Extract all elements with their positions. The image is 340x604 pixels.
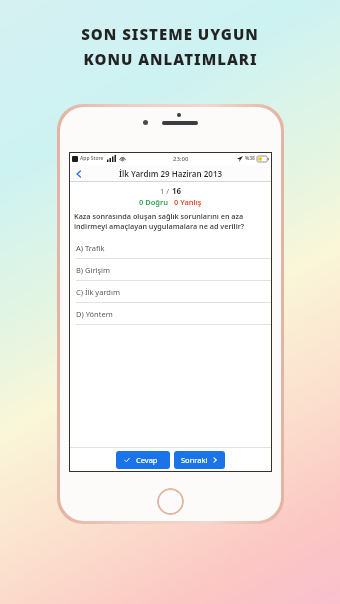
staticText: İlk Yardım 29 Haziran 2013	[119, 168, 223, 179]
staticText: B) Girişim	[76, 265, 111, 275]
button[interactable]: D) Yöntem	[69, 303, 272, 325]
staticText: D) Yöntem	[76, 309, 113, 319]
button[interactable]: Sonraki	[174, 451, 225, 469]
staticText: A) Trafik	[76, 243, 105, 253]
button[interactable]: Cevap	[116, 451, 170, 469]
staticText: SON SISTEME UYGUN	[81, 24, 259, 44]
button[interactable]: A) Trafik	[69, 237, 272, 259]
staticText: App Store	[80, 155, 104, 162]
staticText: 0 Yanlış	[174, 197, 202, 207]
button[interactable]: Home	[157, 488, 184, 515]
staticText: %38	[245, 155, 255, 162]
staticText: Kaza sonrasında oluşan sağlık sorunların…	[74, 211, 267, 231]
staticText: 1 /	[160, 186, 170, 196]
staticText: 16	[172, 185, 182, 196]
staticText: 0 Doğru	[139, 197, 169, 207]
staticText: 23:00	[173, 155, 189, 163]
staticText: Sonraki	[181, 455, 208, 465]
button[interactable]: Back	[71, 166, 87, 182]
staticText: C) İlk yardım	[76, 287, 120, 297]
button[interactable]: C) İlk yardım	[69, 281, 272, 303]
staticText: Cevap	[136, 455, 158, 465]
staticText: KONU ANLATIMLARI	[83, 49, 258, 69]
button[interactable]: B) Girişim	[69, 259, 272, 281]
